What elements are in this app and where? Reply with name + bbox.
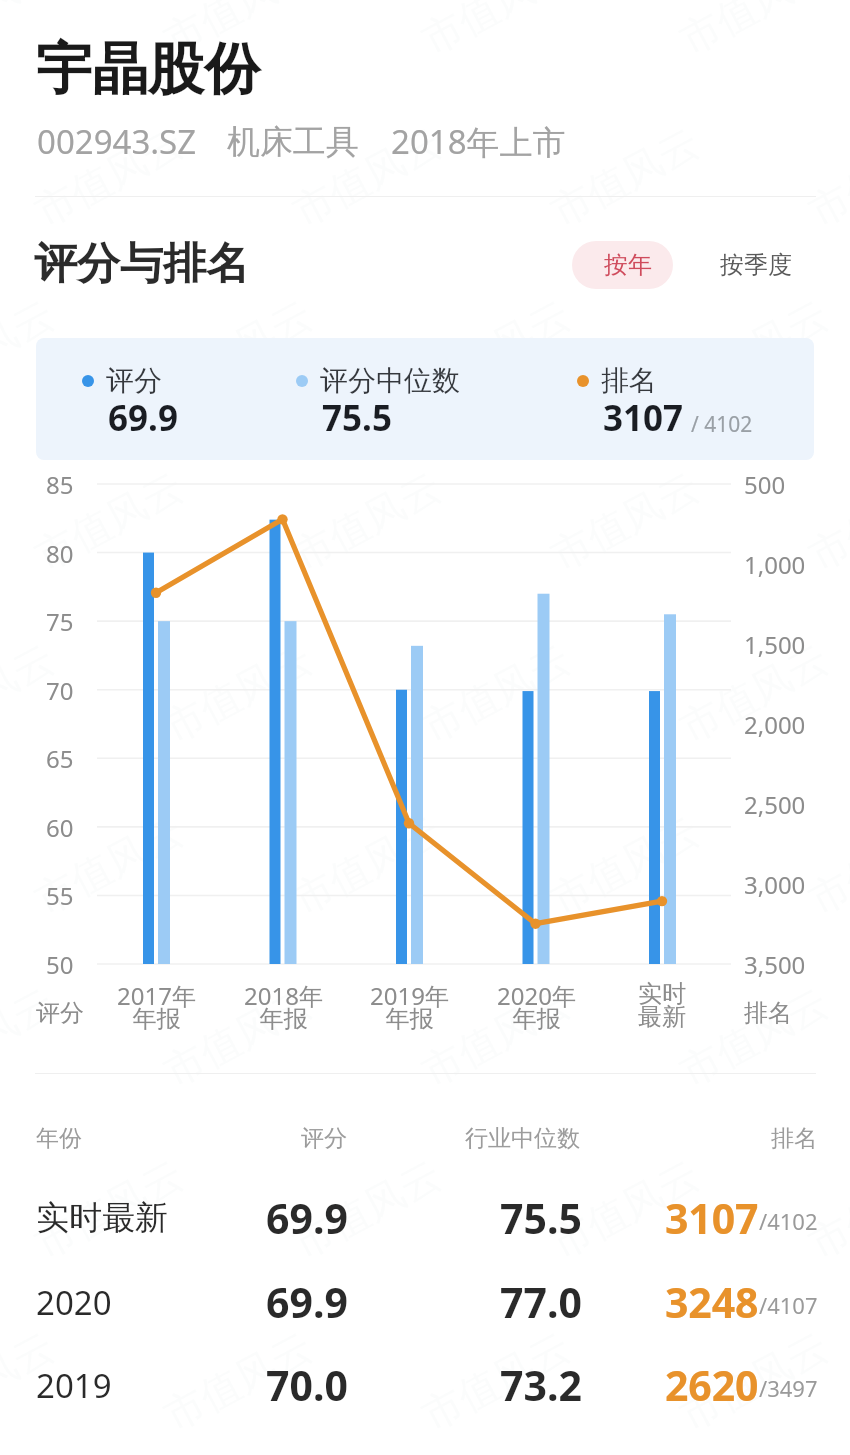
- staticText: 75: [46, 605, 74, 638]
- staticText: 市值风云: [672, 1321, 836, 1441]
- staticText: 80: [46, 537, 74, 570]
- staticText: 市值风云: [27, 1149, 191, 1269]
- staticText: 评分中位数: [320, 363, 460, 398]
- staticText: 市值风云: [285, 805, 449, 925]
- staticText: 市值风云: [672, 977, 836, 1097]
- staticText: 1,500: [744, 628, 806, 661]
- button[interactable]: 2019: [0, 1361, 850, 1409]
- staticText: 2019: [36, 1363, 112, 1408]
- staticText: 市值风云: [156, 977, 320, 1097]
- staticText: 2019年 年报: [370, 979, 449, 1034]
- staticText: 市值风云: [285, 1149, 449, 1269]
- staticText: 2,500: [744, 788, 806, 821]
- staticText: 市值风云: [414, 977, 578, 1097]
- staticText: 市值风云: [156, 0, 320, 65]
- staticText: 50: [46, 948, 74, 981]
- staticText: 77.0: [500, 1274, 582, 1322]
- staticText: 60: [46, 811, 74, 844]
- staticText: 市值风云: [0, 977, 62, 1097]
- button[interactable]: 实时最新: [0, 1194, 850, 1242]
- staticText: 评分: [106, 363, 162, 398]
- staticText: 机床工具: [227, 121, 359, 163]
- staticText: 3107: [603, 394, 684, 442]
- staticText: 75.5: [500, 1190, 582, 1238]
- staticText: 70: [46, 674, 74, 707]
- staticText: 市值风云: [27, 805, 191, 925]
- staticText: 市值风云: [672, 289, 836, 409]
- staticText: 1,000: [744, 548, 806, 581]
- staticText: / 4102: [691, 410, 753, 439]
- staticText: 排名: [601, 363, 657, 398]
- staticText: 市值风云: [414, 289, 578, 409]
- staticText: 市值风云: [27, 117, 191, 237]
- staticText: 69.9: [266, 1190, 348, 1238]
- staticText: 2020: [36, 1280, 112, 1325]
- staticText: 2020年 年报: [497, 979, 576, 1034]
- staticText: 市值风云: [0, 633, 62, 753]
- staticText: 市值风云: [285, 461, 449, 581]
- staticText: 2620: [665, 1357, 759, 1405]
- staticText: 行业中位数: [465, 1124, 580, 1153]
- staticText: 75.5: [322, 394, 392, 442]
- staticText: 2018年 年报: [244, 979, 323, 1034]
- staticText: 评分与排名: [34, 237, 249, 291]
- staticText: 3107: [665, 1190, 759, 1238]
- staticText: 市值风云: [0, 289, 62, 409]
- button[interactable]: 按年: [572, 241, 673, 289]
- staticText: 市值风云: [801, 805, 850, 925]
- staticText: 按年: [604, 250, 652, 280]
- staticText: /4102: [759, 1206, 818, 1236]
- staticText: 宇晶股份: [36, 34, 260, 105]
- staticText: 排名: [744, 998, 792, 1028]
- staticText: 市值风云: [414, 633, 578, 753]
- staticText: 市值风云: [672, 633, 836, 753]
- staticText: 69.9: [108, 394, 178, 442]
- button[interactable]: 按季度: [698, 241, 814, 289]
- staticText: 55: [46, 879, 74, 912]
- staticText: 3,500: [744, 948, 806, 981]
- staticText: 市值风云: [285, 117, 449, 237]
- staticText: 市值风云: [543, 805, 707, 925]
- staticText: 市值风云: [414, 1321, 578, 1441]
- staticText: 市值风云: [0, 1321, 62, 1441]
- staticText: 69.9: [266, 1274, 348, 1322]
- staticText: 70.0: [266, 1357, 348, 1405]
- staticText: 65: [46, 742, 74, 775]
- button[interactable]: 2020: [0, 1278, 850, 1326]
- staticText: 市值风云: [801, 461, 850, 581]
- staticText: 2017年 年报: [117, 979, 196, 1034]
- staticText: 市值风云: [27, 461, 191, 581]
- staticText: 评分: [301, 1124, 347, 1153]
- staticText: 市值风云: [801, 1149, 850, 1269]
- staticText: 市值风云: [156, 1321, 320, 1441]
- staticText: 3,000: [744, 868, 806, 901]
- staticText: /3497: [759, 1373, 818, 1403]
- staticText: 市值风云: [156, 633, 320, 753]
- staticText: 2018年上市: [391, 119, 566, 164]
- staticText: 500: [744, 468, 786, 501]
- staticText: 85: [46, 468, 74, 501]
- staticText: 排名: [771, 1124, 817, 1153]
- staticText: 按季度: [720, 250, 792, 280]
- staticText: 市值风云: [543, 117, 707, 237]
- staticText: 评分: [36, 998, 84, 1028]
- staticText: 2,000: [744, 708, 806, 741]
- staticText: 实时最新: [36, 1197, 168, 1239]
- staticText: 年份: [36, 1124, 82, 1153]
- staticText: 市值风云: [156, 289, 320, 409]
- staticText: 实时 最新: [638, 979, 686, 1032]
- staticText: 002943.SZ: [37, 119, 197, 164]
- staticText: 市值风云: [0, 0, 62, 65]
- staticText: 73.2: [500, 1357, 582, 1405]
- staticText: 市值风云: [543, 1149, 707, 1269]
- staticText: /4107: [759, 1290, 818, 1320]
- staticText: 3248: [665, 1274, 759, 1322]
